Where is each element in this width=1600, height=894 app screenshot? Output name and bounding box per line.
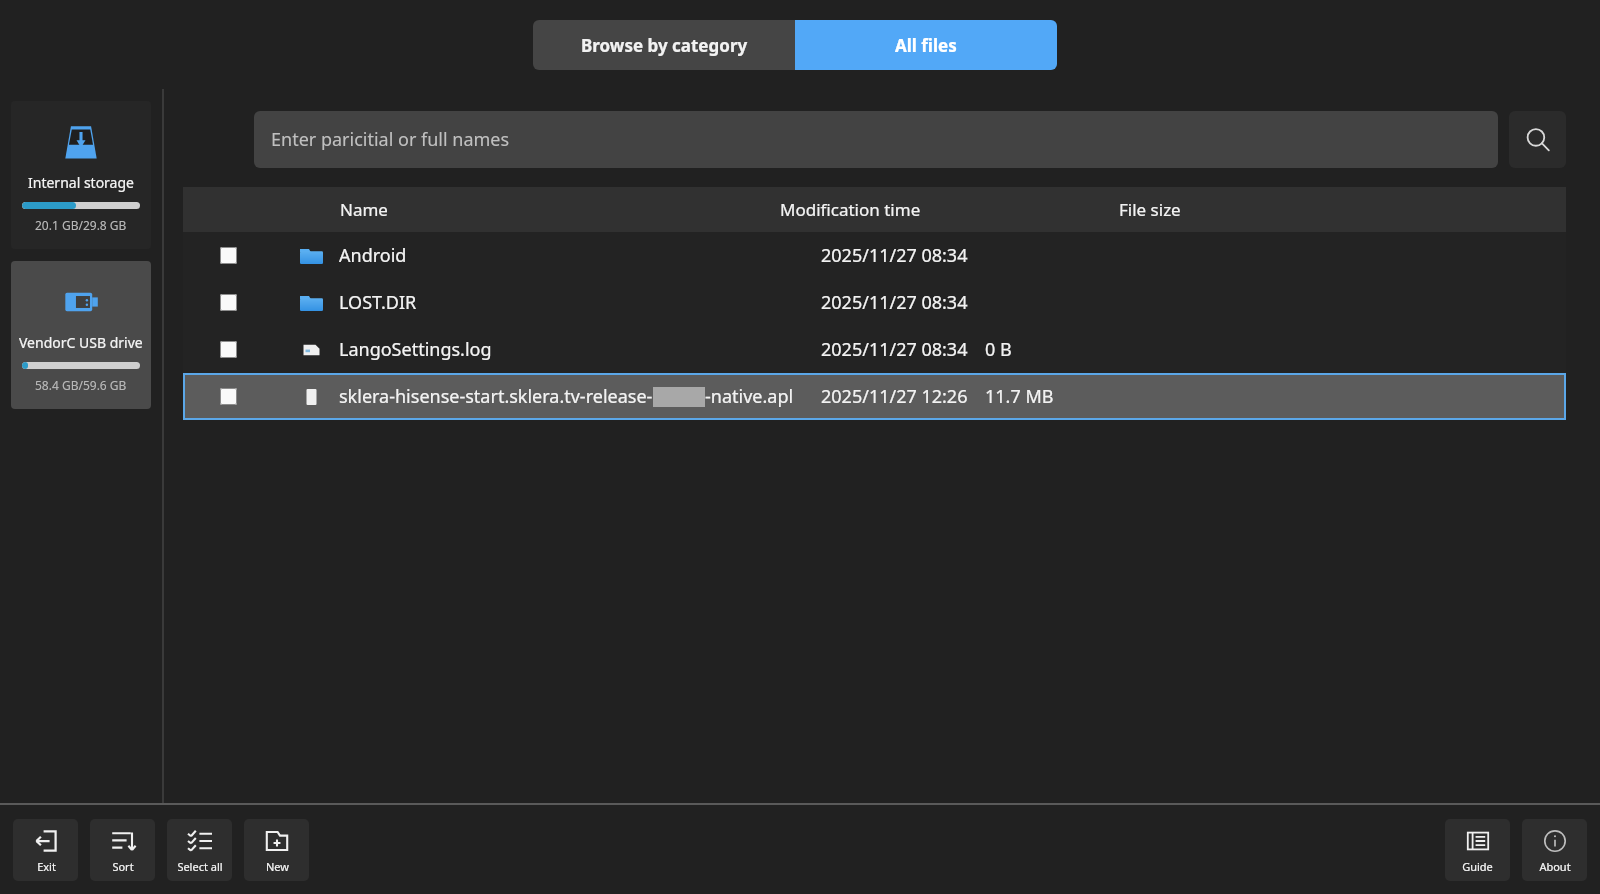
staticText: Select all	[177, 859, 223, 874]
staticText: LangoSettings.log	[339, 337, 492, 362]
staticText: Sort	[112, 859, 134, 874]
staticText: About	[1539, 859, 1571, 874]
button[interactable]: Enter paricitial or full names	[254, 111, 1498, 168]
staticText: Android	[339, 243, 407, 268]
button[interactable]: LangoSettings.log	[183, 326, 1566, 373]
staticText: 20.1 GB/29.8 GB	[35, 217, 127, 233]
staticText: Modification time	[780, 198, 921, 221]
staticText: 0 B	[985, 337, 1012, 362]
button[interactable]: Internal storage	[11, 101, 151, 249]
staticText: Guide	[1462, 859, 1493, 874]
staticText: 58.4 GB/59.6 GB	[35, 377, 127, 393]
staticText: New	[266, 859, 289, 874]
staticText: VendorC USB drive	[19, 333, 143, 352]
staticText: File size	[1119, 198, 1181, 221]
button[interactable]: Exit	[13, 819, 78, 881]
button[interactable]: Select all	[167, 819, 232, 881]
button[interactable]: VendorC USB drive	[11, 261, 151, 409]
staticText: Exit	[37, 859, 56, 874]
staticText: 11.7 MB	[985, 384, 1054, 409]
staticText: Enter paricitial or full names	[271, 127, 510, 152]
button[interactable]: About	[1522, 819, 1587, 881]
staticText: 2025/11/27 08:34	[821, 243, 968, 268]
button[interactable]: New	[244, 819, 309, 881]
staticText: sklera-hisense-start.sklera.tv-release-	[339, 384, 653, 409]
button[interactable]: Guide	[1445, 819, 1510, 881]
button[interactable]: Sort	[90, 819, 155, 881]
staticText: 2025/11/27 08:34	[821, 290, 968, 315]
button[interactable]: Search	[1509, 111, 1566, 168]
staticText: 2025/11/27 08:34	[821, 337, 968, 362]
button[interactable]: sklera-hisense-start.sklera.tv-release-	[183, 373, 1566, 420]
staticText: LOST.DIR	[339, 290, 417, 315]
staticText: Name	[340, 198, 388, 221]
button[interactable]: Android	[183, 232, 1566, 279]
button[interactable]: Browse by category	[533, 20, 795, 70]
staticText: Browse by category	[581, 34, 748, 57]
staticText: Internal storage	[28, 173, 134, 192]
button[interactable]: LOST.DIR	[183, 279, 1566, 326]
staticText: All files	[895, 34, 957, 57]
staticText: 2025/11/27 12:26	[821, 384, 968, 409]
staticText: -native.apl	[705, 384, 794, 409]
button[interactable]: All files	[795, 20, 1057, 70]
